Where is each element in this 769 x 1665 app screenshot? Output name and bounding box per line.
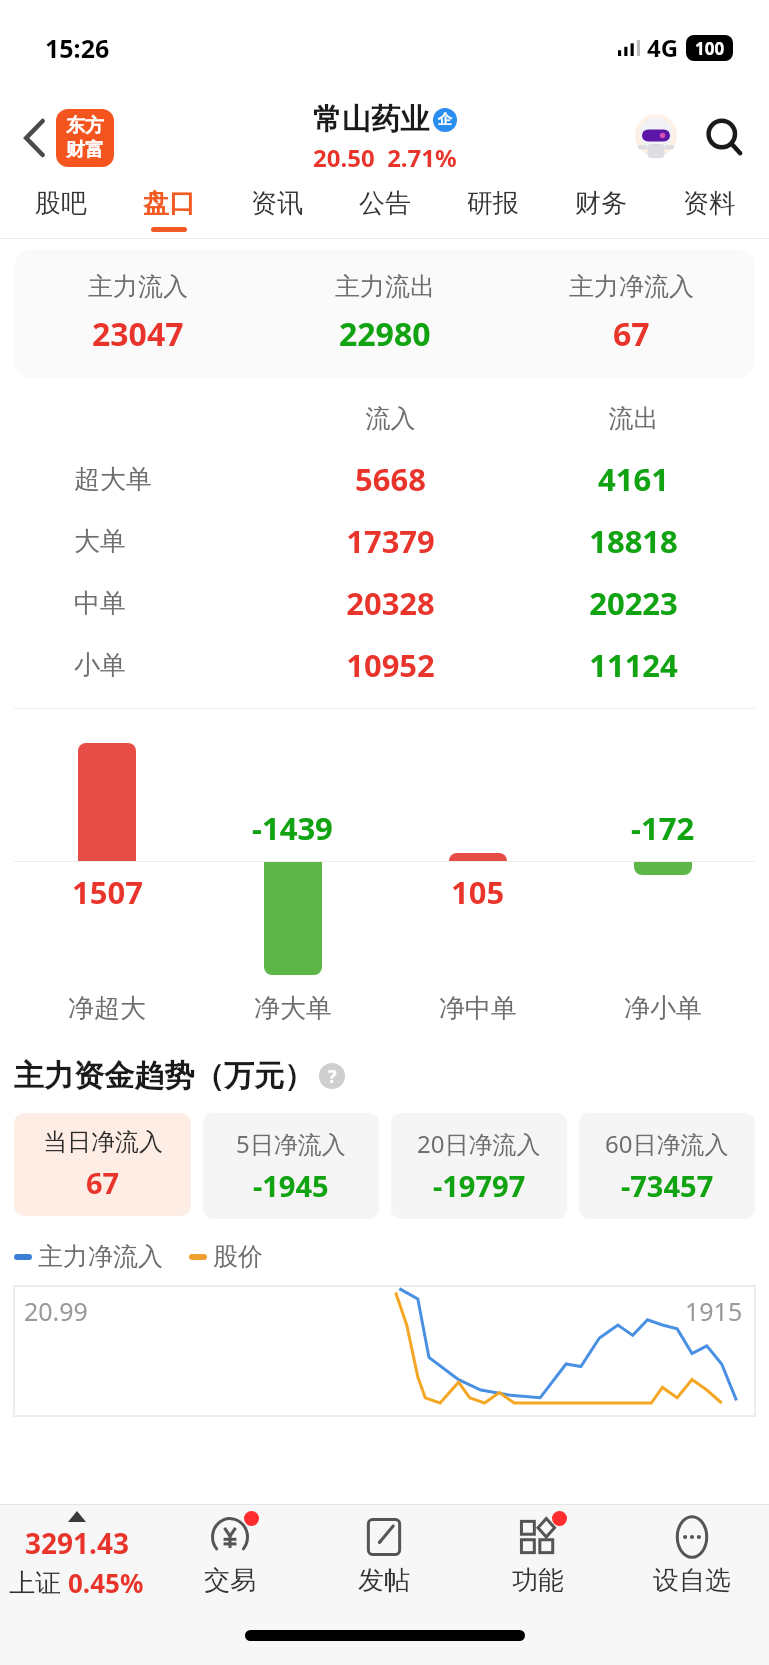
staticText: 67 (86, 1163, 120, 1202)
staticText: 常山药业 (313, 101, 429, 138)
button[interactable]: 20日净流入 (391, 1113, 567, 1219)
staticText: -1439 (252, 807, 333, 849)
staticText: 上证 (9, 1564, 68, 1600)
button[interactable]: 功能 (461, 1505, 615, 1605)
button[interactable]: 设自选 (615, 1505, 769, 1605)
staticText: 22980 (339, 312, 431, 356)
button[interactable]: Search (695, 108, 755, 168)
staticText: 主力流出 (335, 271, 435, 302)
staticText: 20223 (512, 582, 755, 624)
staticText: 主力净流入 (38, 1241, 163, 1272)
staticText: 1915 (685, 1294, 743, 1328)
staticText: 发帖 (358, 1564, 410, 1597)
staticText: 1507 (72, 871, 143, 913)
staticText: 设自选 (653, 1564, 731, 1597)
staticText: 主力流入 (88, 271, 188, 302)
staticText: -73457 (621, 1166, 714, 1205)
staticText: 主力净流入 (569, 271, 694, 302)
staticText: 100 (695, 37, 725, 60)
staticText: 0.45% (68, 1565, 144, 1600)
button[interactable]: 财务 (547, 180, 655, 238)
staticText: 5日净流入 (236, 1127, 346, 1160)
staticText: 小单 (74, 649, 269, 682)
staticText: -172 (631, 807, 695, 849)
staticText: 11124 (512, 644, 755, 686)
staticText: 股吧 (35, 187, 87, 220)
staticText: 流出 (512, 403, 755, 434)
staticText: 18818 (512, 520, 755, 562)
button[interactable]: 资讯 (223, 180, 331, 238)
staticText: 财富 (66, 138, 104, 162)
button[interactable]: 主力流入 (14, 271, 755, 356)
button[interactable]: 大单 (14, 510, 755, 572)
staticText: 净小单 (624, 992, 702, 1025)
staticText: 15:26 (45, 31, 110, 65)
staticText: 功能 (512, 1564, 564, 1597)
staticText: 60日净流入 (605, 1127, 729, 1160)
staticText: 流入 (269, 403, 512, 434)
staticText: 中单 (74, 587, 269, 620)
button[interactable]: 5日净流入 (203, 1113, 379, 1219)
button[interactable]: 研报 (439, 180, 547, 238)
button[interactable]: 交易 (153, 1505, 307, 1605)
staticText: 大单 (74, 525, 269, 558)
staticText: 净中单 (439, 992, 517, 1025)
staticText: 盘口 (143, 187, 195, 220)
staticText: 20.50 2.71% (313, 141, 457, 174)
staticText: 净大单 (254, 992, 332, 1025)
staticText: 67 (613, 312, 650, 356)
staticText: 净超大 (68, 992, 146, 1025)
staticText: 20日净流入 (417, 1127, 541, 1160)
staticText: 105 (451, 871, 505, 913)
staticText: 资讯 (251, 187, 303, 220)
staticText: 财务 (575, 187, 627, 220)
staticText: 17379 (269, 520, 512, 562)
button[interactable]: 资料 (655, 180, 763, 238)
staticText: 23047 (92, 312, 184, 356)
staticText: 公告 (359, 187, 411, 220)
staticText: 交易 (204, 1564, 256, 1597)
button[interactable]: 小单 (14, 634, 755, 696)
staticText: 3291.43 (25, 1524, 129, 1562)
staticText: 股价 (213, 1241, 263, 1272)
staticText: 资料 (683, 187, 735, 220)
staticText: 当日净流入 (43, 1127, 163, 1157)
staticText: ? (328, 1064, 337, 1089)
button[interactable]: 当日净流入 (14, 1113, 191, 1216)
staticText: 20328 (269, 582, 512, 624)
button[interactable]: AI assistant (625, 107, 687, 169)
staticText: 东方 (66, 114, 104, 138)
button[interactable]: 3291.43 (0, 1505, 153, 1605)
staticText: 20.99 (24, 1294, 88, 1328)
button[interactable]: 中单 (14, 572, 755, 634)
staticText: 超大单 (74, 463, 269, 496)
button[interactable]: 60日净流入 (579, 1113, 755, 1219)
staticText: 5668 (269, 458, 512, 500)
button[interactable]: 公告 (331, 180, 439, 238)
button[interactable]: Help (319, 1063, 345, 1089)
button[interactable]: 发帖 (307, 1505, 461, 1605)
button[interactable]: 东方财富 (56, 109, 114, 167)
staticText: -1945 (253, 1166, 329, 1205)
staticText: 企 (438, 111, 452, 129)
staticText: 研报 (467, 187, 519, 220)
staticText: 4161 (512, 458, 755, 500)
staticText: -19797 (433, 1166, 526, 1205)
button[interactable]: Back (8, 111, 62, 165)
button[interactable]: 盘口 (115, 180, 223, 238)
button[interactable]: 股吧 (6, 180, 115, 238)
staticText: 4G (647, 31, 679, 64)
staticText: 主力资金趋势（万元） (14, 1057, 314, 1095)
staticText: 10952 (269, 644, 512, 686)
button[interactable]: 超大单 (14, 448, 755, 510)
